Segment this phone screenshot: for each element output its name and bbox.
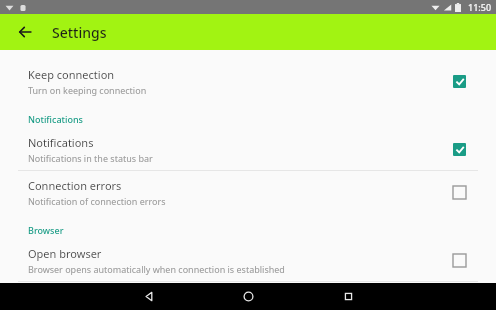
staticText: Browser opens automatically when connect… [28,263,285,275]
staticText: Notifications [28,113,83,125]
button[interactable]: Back [98,283,198,310]
button[interactable]: Checked [448,138,470,160]
button[interactable]: Unchecked [448,181,470,203]
staticText: 11:50 [468,1,492,13]
button[interactable]: Connection errors [0,171,496,213]
staticText: Notification of connection errors [28,195,166,207]
staticText: Notifications [28,135,94,150]
button[interactable]: Keep connection [0,60,496,102]
staticText: Keep connection [28,67,115,82]
staticText: Open browser [28,246,102,261]
button[interactable]: Home [198,283,298,310]
staticText: Notifications in the status bar [28,152,153,164]
button[interactable]: Checked [448,70,470,92]
staticText: Turn on keeping connection [28,84,147,96]
button[interactable]: Notifications [0,128,496,170]
staticText: Browser [28,224,64,236]
button[interactable]: Recent apps [298,283,398,310]
button[interactable]: Open browser [0,239,496,281]
staticText: Connection errors [28,178,122,193]
button[interactable]: Unchecked [448,249,470,271]
button[interactable]: Back [12,19,38,45]
staticText: Settings [52,23,107,42]
